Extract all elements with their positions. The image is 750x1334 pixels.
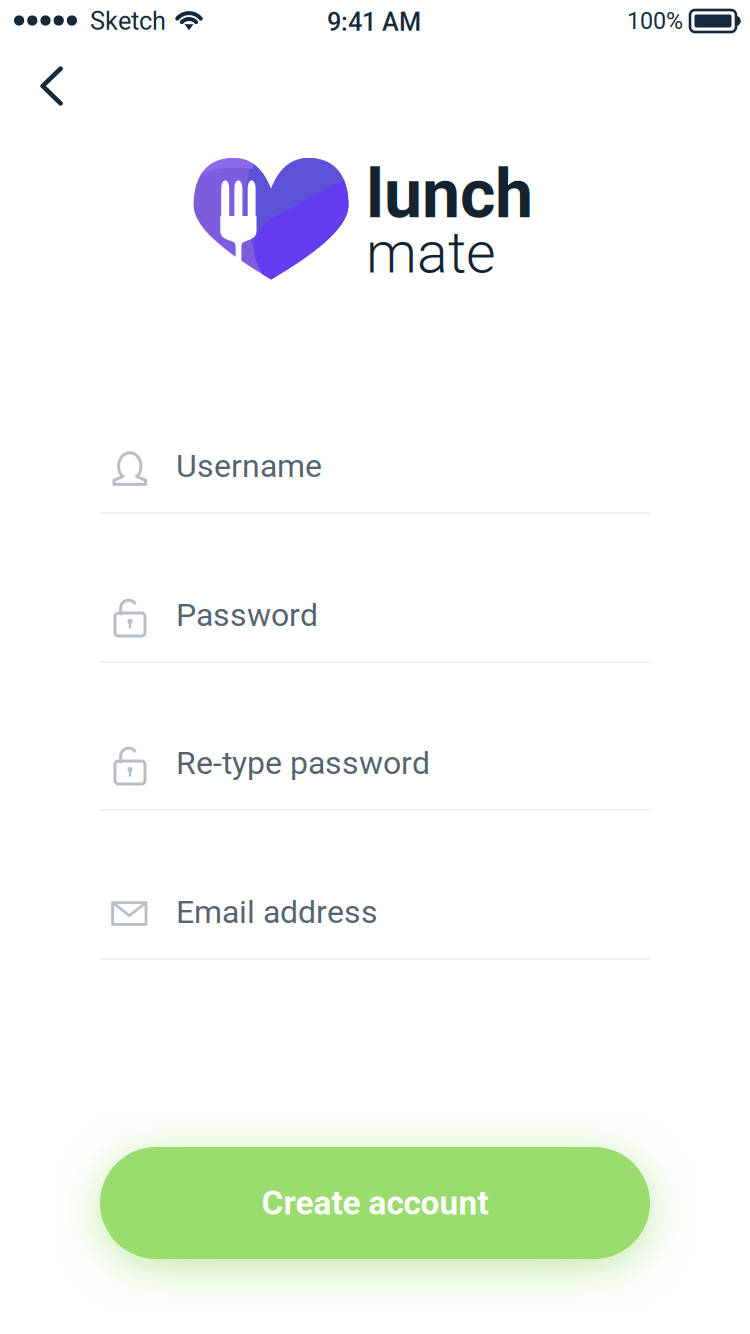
button[interactable]: Re-type password	[100, 723, 650, 811]
staticText: 9:41 AM	[327, 7, 421, 37]
staticText: Password	[176, 596, 318, 634]
button[interactable]: Password	[100, 575, 650, 663]
staticText: Email address	[176, 893, 378, 931]
staticText: Re-type password	[176, 744, 430, 782]
button[interactable]: Back	[14, 51, 92, 121]
staticText: Create account	[261, 1183, 488, 1223]
staticText: Username	[176, 447, 322, 485]
staticText: lunch	[366, 154, 533, 234]
button[interactable]: Email address	[100, 872, 650, 960]
staticText: Sketch	[90, 6, 166, 36]
button[interactable]: Username	[100, 426, 650, 514]
button[interactable]: Create account	[100, 1147, 650, 1259]
staticText: mate	[366, 219, 496, 287]
staticText: 100%	[627, 7, 683, 35]
